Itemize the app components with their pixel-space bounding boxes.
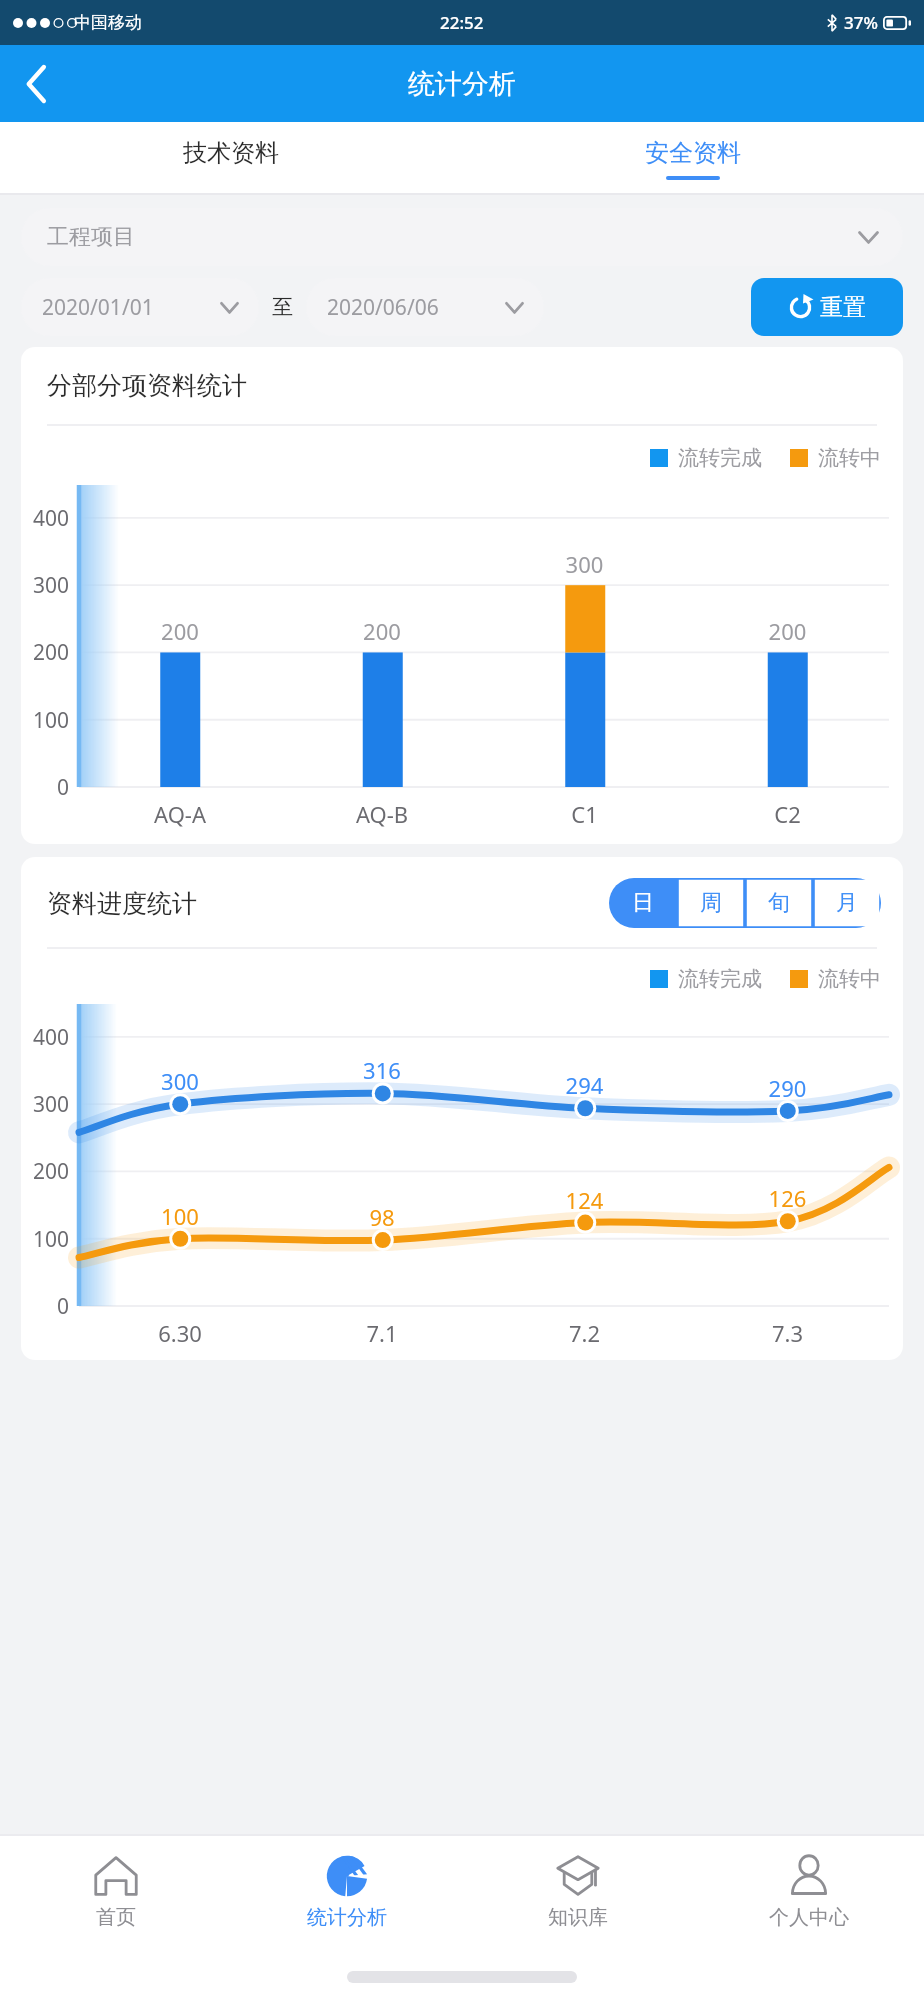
staticText: 日	[632, 889, 654, 917]
button[interactable]: 知识库	[462, 1836, 693, 1954]
staticText: 流转完成	[678, 966, 762, 992]
staticText: 300	[79, 1066, 281, 1096]
staticText: 316	[281, 1055, 483, 1085]
staticText: 2020/06/06	[327, 293, 505, 322]
staticText: 重置	[820, 293, 866, 322]
staticText: 安全资料	[645, 138, 741, 168]
staticText: 200	[21, 1157, 69, 1186]
button[interactable]: 个人中心	[693, 1836, 924, 1954]
staticText: 流转完成	[678, 445, 762, 471]
staticText: 22:52	[440, 11, 484, 34]
staticText: 98	[281, 1202, 483, 1232]
staticText: 37%	[844, 11, 878, 34]
staticText: 6.30	[79, 1318, 281, 1348]
staticText: C2	[686, 799, 889, 829]
button[interactable]: 旬	[745, 878, 813, 928]
staticText: 至	[272, 294, 293, 320]
staticText: 290	[686, 1073, 889, 1103]
staticText: 100	[21, 1225, 69, 1254]
staticText: 126	[686, 1183, 889, 1213]
staticText: 月	[836, 889, 858, 917]
staticText: 200	[281, 616, 483, 646]
staticText: 2020/01/01	[42, 293, 220, 322]
staticText: 个人中心	[769, 1905, 849, 1930]
staticText: 300	[21, 1090, 69, 1119]
staticText: 300	[483, 549, 686, 579]
staticText: 7.3	[686, 1318, 889, 1348]
staticText: 124	[483, 1185, 686, 1215]
staticText: 100	[79, 1201, 281, 1231]
button[interactable]: 2020/01/01	[21, 278, 259, 336]
staticText: 0	[21, 1292, 69, 1321]
button[interactable]: 安全资料	[462, 122, 924, 195]
staticText: 中国移动	[74, 12, 142, 33]
staticText: C1	[483, 799, 686, 829]
button[interactable]: 2020/06/06	[306, 278, 544, 336]
staticText: 技术资料	[183, 138, 279, 168]
button[interactable]: 首页	[0, 1836, 231, 1954]
staticText: 294	[483, 1070, 686, 1100]
staticText: 分部分项资料统计	[47, 370, 247, 401]
staticText: 100	[21, 706, 69, 735]
staticText: 统计分析	[307, 1905, 387, 1930]
button[interactable]: 周	[677, 878, 745, 928]
staticText: 200	[21, 638, 69, 667]
staticText: 流转中	[818, 966, 881, 992]
button[interactable]: 技术资料	[0, 122, 462, 195]
staticText: AQ-B	[281, 799, 483, 829]
staticText: 7.2	[483, 1318, 686, 1348]
staticText: 200	[79, 616, 281, 646]
staticText: 首页	[96, 1905, 136, 1930]
staticText: 0	[21, 773, 69, 802]
button[interactable]: 工程项目	[21, 208, 903, 266]
staticText: 旬	[768, 889, 790, 917]
button[interactable]: 统计分析	[231, 1836, 462, 1954]
staticText: 400	[21, 504, 69, 533]
staticText: 300	[21, 571, 69, 600]
staticText: 资料进度统计	[47, 888, 197, 919]
button[interactable]: 重置	[751, 278, 903, 336]
staticText: 7.1	[281, 1318, 483, 1348]
button[interactable]: Back	[0, 48, 72, 120]
staticText: 周	[700, 889, 722, 917]
staticText: 工程项目	[47, 223, 858, 251]
staticText: 400	[21, 1023, 69, 1052]
staticText: 知识库	[548, 1905, 608, 1930]
staticText: AQ-A	[79, 799, 281, 829]
button[interactable]: 日	[609, 878, 677, 928]
button[interactable]: 月	[813, 878, 881, 928]
staticText: 统计分析	[408, 67, 516, 101]
staticText: 流转中	[818, 445, 881, 471]
staticText: 200	[686, 616, 889, 646]
